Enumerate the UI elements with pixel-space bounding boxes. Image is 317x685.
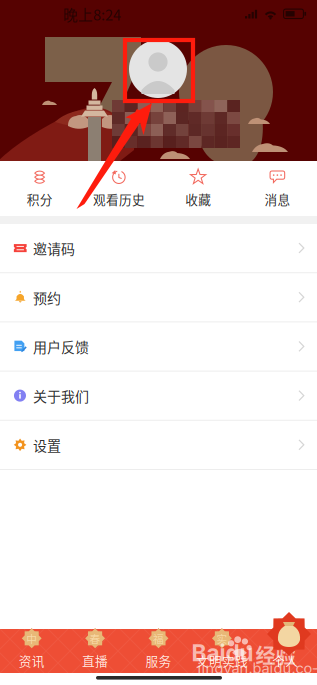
- button[interactable]: 福: [127, 629, 190, 673]
- button[interactable]: 关于我们: [0, 372, 317, 421]
- staticText: 邀请码: [33, 238, 75, 258]
- staticText: 直播: [82, 651, 108, 670]
- staticText: 服务: [145, 651, 171, 670]
- button[interactable]: 中: [0, 629, 63, 673]
- staticText: 资讯: [19, 651, 45, 670]
- button[interactable]: 收藏: [158, 161, 238, 216]
- button[interactable]: 设置: [0, 421, 317, 470]
- staticText: 积分: [27, 190, 53, 208]
- button[interactable]: 消息: [238, 161, 317, 216]
- staticText: 消息: [264, 190, 290, 208]
- button[interactable]: 个人: [254, 629, 317, 673]
- staticText: 收藏: [185, 190, 211, 208]
- button[interactable]: Profile photo: [129, 40, 187, 98]
- button[interactable]: 实: [190, 629, 254, 673]
- button[interactable]: 用户反馈: [0, 322, 317, 372]
- button[interactable]: 邀请码: [0, 224, 317, 273]
- staticText: 关于我们: [33, 386, 89, 406]
- staticText: 观看历史: [93, 190, 145, 208]
- button[interactable]: 观看历史: [79, 161, 158, 216]
- staticText: 预约: [33, 287, 61, 307]
- staticText: 个人: [272, 651, 298, 670]
- staticText: 经验: [255, 640, 295, 669]
- button[interactable]: 积分: [0, 161, 79, 216]
- staticText: 设置: [33, 435, 61, 455]
- staticText: 文明实践: [196, 651, 248, 670]
- staticText: 晚上8:24: [63, 3, 121, 25]
- staticText: 福: [153, 631, 164, 646]
- staticText: 春: [90, 631, 101, 646]
- button[interactable]: 预约: [0, 273, 317, 322]
- button[interactable]: 春: [63, 629, 127, 673]
- staticText: Baidu: [191, 639, 253, 667]
- staticText: jingyan.baidu.com: [197, 659, 317, 685]
- staticText: 实: [216, 631, 227, 646]
- staticText: 中: [26, 631, 37, 646]
- staticText: 用户反馈: [33, 336, 89, 357]
